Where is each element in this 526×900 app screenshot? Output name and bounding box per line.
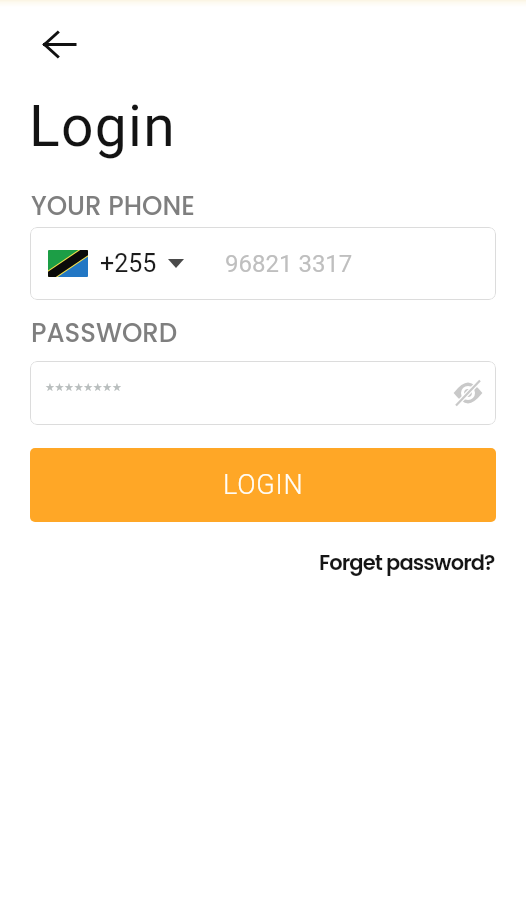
staticText: Forget password? [319,548,495,577]
button[interactable]: Forget password? [312,541,502,584]
staticText: +255 [100,249,157,278]
button[interactable]: Show password [445,370,491,416]
staticText: LOGIN [223,469,304,501]
button[interactable]: Select country code, Tanzania +255 [48,227,184,300]
staticText: PASSWORD [31,315,178,351]
button[interactable]: Phone number field [30,227,496,300]
button[interactable]: LOGIN [30,448,496,522]
staticText: ★★★★★★★★ [45,381,122,394]
staticText: YOUR PHONE [31,188,195,224]
button[interactable]: Password field [30,361,496,425]
staticText: 96821 3317 [225,250,353,278]
staticText: Login [29,93,177,160]
button[interactable]: Back [35,20,83,68]
